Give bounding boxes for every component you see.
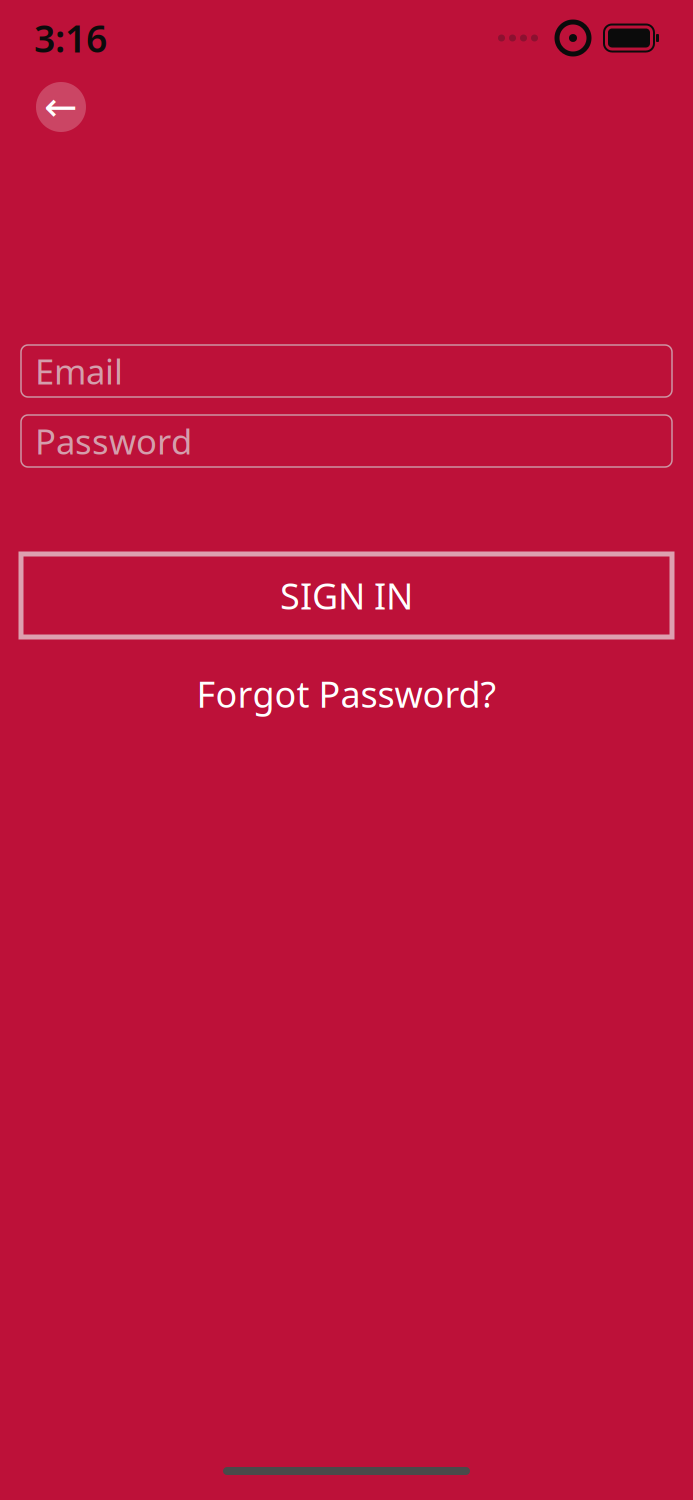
staticText: Password [35,418,192,464]
button[interactable]: Forgot Password? [182,664,510,724]
staticText: 3:16 [34,13,107,63]
staticText: Email [35,348,123,394]
staticText: Forgot Password? [196,670,496,718]
button[interactable]: Back [36,82,86,132]
staticText: ← [44,84,78,130]
staticText: SIGN IN [280,572,413,619]
button[interactable]: SIGN IN [21,554,672,637]
